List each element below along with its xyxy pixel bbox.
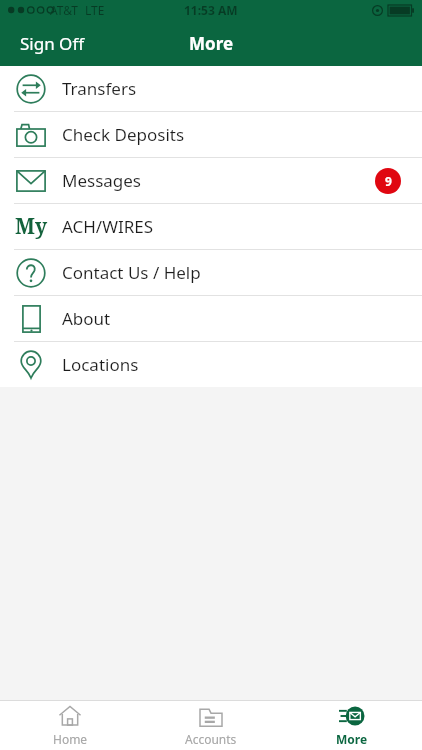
button[interactable]: Contact Us / Help: [0, 250, 422, 295]
staticText: Check Deposits: [62, 123, 422, 146]
staticText: Home: [53, 731, 88, 747]
other: Accounts: [199, 706, 223, 727]
button[interactable]: Check Deposits: [0, 112, 422, 157]
staticText: Messages: [62, 169, 375, 192]
button[interactable]: Sign Off: [0, 22, 105, 65]
staticText: Contact Us / Help: [62, 261, 422, 284]
other: Home: [58, 704, 82, 728]
staticText: AT&T: [50, 2, 78, 18]
staticText: Accounts: [185, 731, 237, 747]
button[interactable]: Messages: [0, 158, 422, 203]
button[interactable]: Transfers: [0, 66, 422, 111]
button[interactable]: Home: [0, 701, 140, 750]
button[interactable]: My: [0, 204, 422, 249]
staticText: My: [15, 212, 48, 241]
button[interactable]: Locations: [0, 342, 422, 387]
staticText: About: [62, 307, 422, 330]
staticText: More: [189, 32, 234, 55]
staticText: More: [336, 731, 368, 747]
button[interactable]: More: [281, 701, 422, 750]
button[interactable]: About: [0, 296, 422, 341]
staticText: 9: [385, 173, 392, 189]
staticText: Transfers: [62, 77, 422, 100]
staticText: ACH/WIRES: [62, 215, 422, 238]
button[interactable]: Accounts: [140, 701, 281, 750]
staticText: LTE: [85, 2, 105, 18]
staticText: Sign Off: [20, 32, 85, 55]
other: More: [339, 706, 365, 726]
staticText: Locations: [62, 353, 422, 376]
staticText: 11:53 AM: [184, 2, 238, 18]
